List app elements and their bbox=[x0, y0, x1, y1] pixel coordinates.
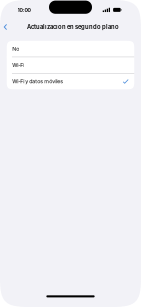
button[interactable]: No bbox=[7, 41, 134, 57]
staticText: Wi-Fi bbox=[12, 62, 24, 68]
button[interactable]: Back bbox=[0, 19, 10, 35]
staticText: 10:00 bbox=[17, 7, 30, 13]
staticText: Actualización en segundo plano bbox=[27, 23, 119, 30]
button[interactable]: Wi-Fi y datos móviles bbox=[7, 73, 134, 89]
button[interactable]: Wi-Fi bbox=[7, 57, 134, 73]
staticText: No bbox=[12, 46, 19, 52]
staticText: Wi-Fi y datos móviles bbox=[12, 78, 63, 85]
